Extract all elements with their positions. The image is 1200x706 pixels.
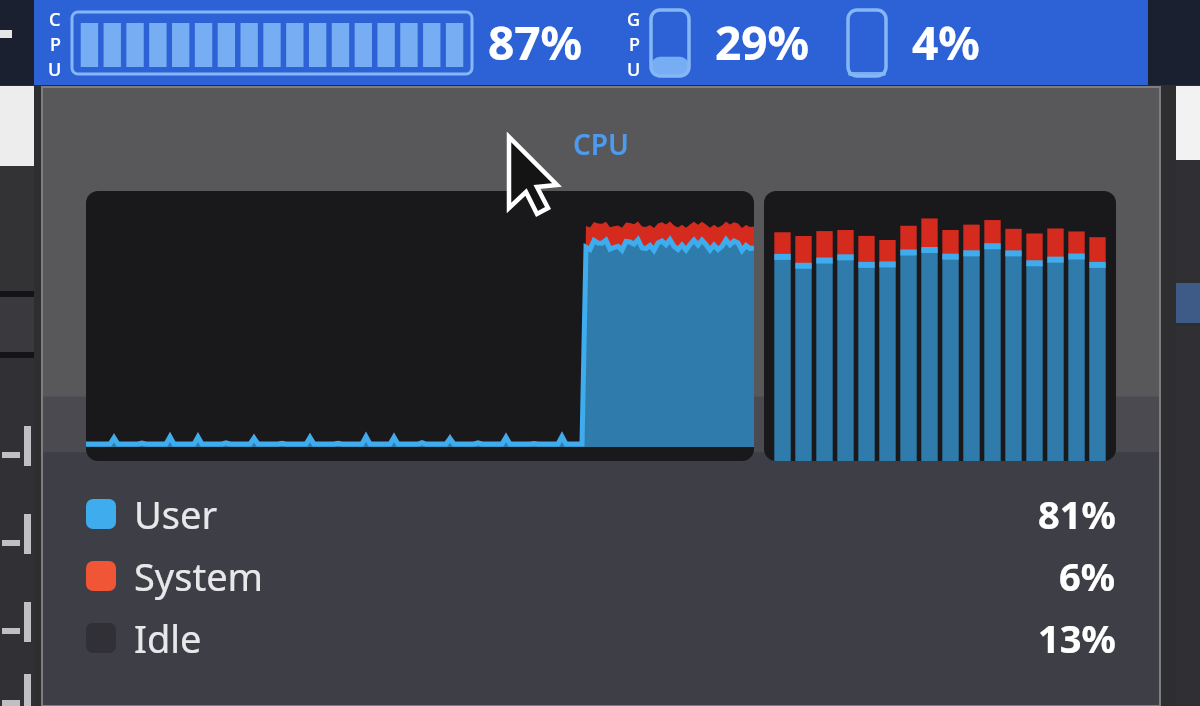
staticText: 29%	[715, 11, 810, 74]
button[interactable]: System	[86, 545, 1116, 607]
button[interactable]: Gauge	[651, 10, 689, 76]
staticText: U	[627, 57, 641, 79]
staticText: 81%	[1038, 488, 1116, 540]
button[interactable]: Gauge	[848, 10, 886, 76]
staticText: System	[134, 550, 264, 602]
staticText: 6%	[1059, 550, 1116, 602]
staticText: P	[629, 32, 640, 57]
staticText: User	[134, 488, 218, 540]
button[interactable]: CPU history graph	[86, 191, 754, 461]
staticText: 13%	[1038, 612, 1116, 664]
button[interactable]: Idle	[86, 607, 1116, 669]
staticText: G	[627, 7, 641, 32]
staticText: C	[49, 7, 61, 32]
staticText: P	[50, 32, 61, 57]
button[interactable]: Per core usage	[764, 191, 1116, 461]
button[interactable]: CPU meter	[72, 12, 472, 74]
staticText: U	[48, 57, 62, 79]
staticText: 87%	[488, 11, 583, 74]
staticText: Idle	[134, 612, 202, 664]
staticText: CPU	[42, 125, 1160, 163]
button[interactable]: User	[86, 483, 1116, 545]
staticText: 4%	[912, 11, 980, 74]
